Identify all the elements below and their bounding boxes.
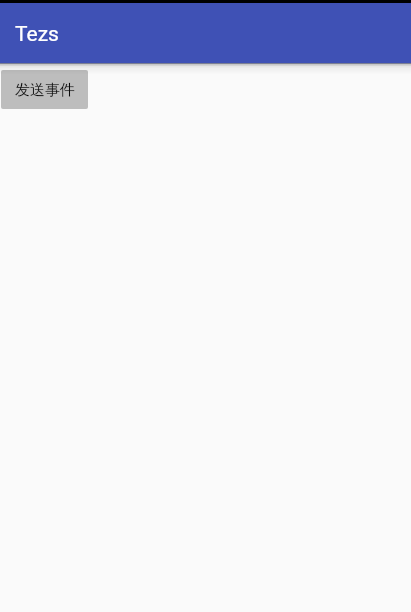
staticText: 发送事件 (15, 81, 75, 100)
staticText: Tezs (15, 22, 59, 47)
button[interactable]: 发送事件 (1, 70, 88, 109)
